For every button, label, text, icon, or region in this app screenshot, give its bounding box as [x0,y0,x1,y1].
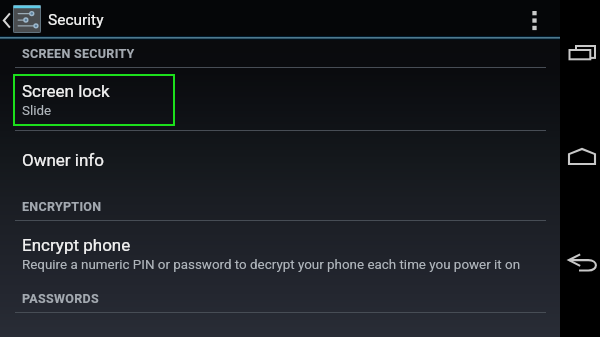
button[interactable]: Screen lock [13,74,175,126]
staticText: SCREEN SECURITY [22,46,135,61]
staticText: Screen lock [22,81,110,101]
staticText: PASSWORDS [22,291,99,306]
staticText: Owner info [22,150,104,170]
button[interactable]: More options [516,0,560,36]
staticText: Security [48,11,104,29]
staticText: Encrypt phone [22,235,131,255]
button[interactable]: Navigate up [0,0,42,36]
button[interactable]: Owner info [0,131,560,178]
button[interactable]: Encrypt phone [0,221,560,279]
button[interactable]: Home [560,130,600,182]
staticText: Require a numeric PIN or password to dec… [22,257,521,273]
staticText: Slide [22,103,52,119]
staticText: ENCRYPTION [22,199,102,214]
button[interactable]: Recent apps [560,27,600,79]
button[interactable]: Back [560,236,600,288]
